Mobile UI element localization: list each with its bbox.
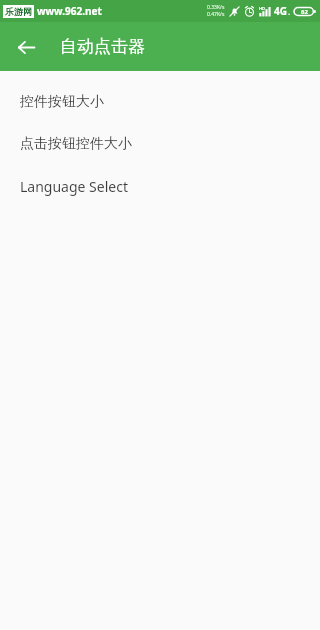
staticText: 点击按钮控件大小 bbox=[20, 135, 132, 153]
staticText: 4G bbox=[274, 4, 287, 18]
button[interactable]: Language Select bbox=[0, 165, 320, 207]
button[interactable]: 控件按钮大小 bbox=[0, 81, 320, 123]
staticText: 控件按钮大小 bbox=[20, 93, 104, 111]
staticText: . bbox=[288, 6, 291, 17]
staticText: 0.33K/s bbox=[207, 4, 225, 11]
staticText: 乐游网 bbox=[5, 6, 32, 17]
staticText: 0.47K/s bbox=[207, 11, 225, 18]
staticText: Language Select bbox=[20, 177, 128, 196]
staticText: 62 bbox=[301, 8, 308, 16]
staticText: www.962.net bbox=[37, 4, 102, 18]
button[interactable]: Back bbox=[10, 31, 42, 63]
staticText: HD bbox=[259, 6, 265, 11]
staticText: 自动点击器 bbox=[60, 36, 145, 57]
button[interactable]: 点击按钮控件大小 bbox=[0, 123, 320, 165]
